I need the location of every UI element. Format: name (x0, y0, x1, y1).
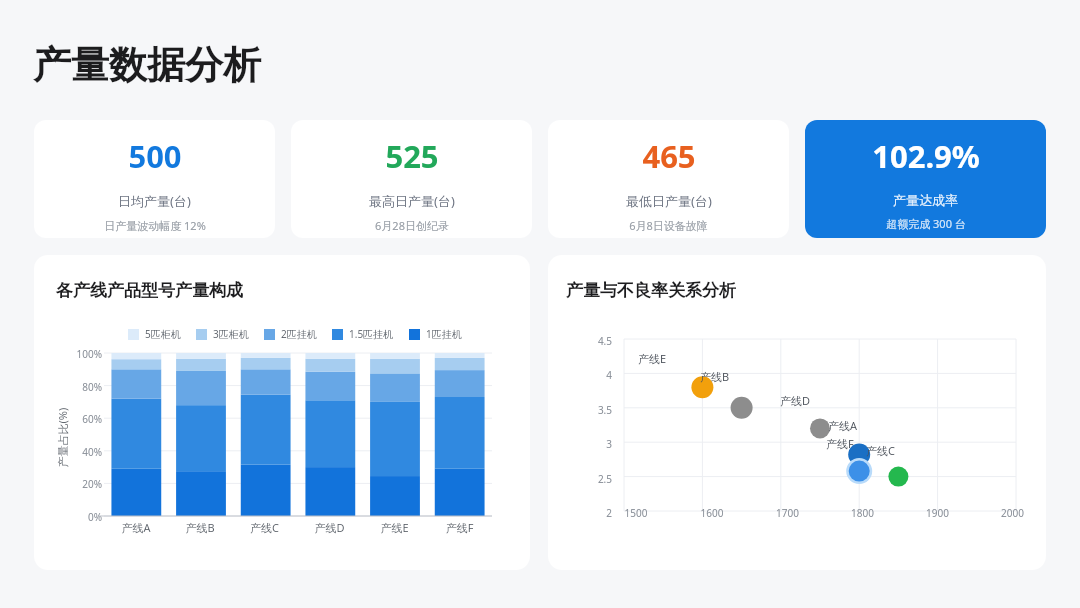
staticText: 产线C (232, 520, 297, 535)
button[interactable]: 500 (34, 120, 275, 238)
staticText: 产量占比(%) (54, 407, 69, 467)
staticText: 产量数据分析 (33, 41, 261, 89)
button[interactable]: 525 (291, 120, 532, 238)
staticText: 1600 (674, 506, 750, 520)
staticText: 2匹挂机 (281, 327, 317, 341)
staticText: 产线E (638, 351, 667, 366)
staticText: 3.5 (584, 403, 612, 417)
staticText: 1800 (825, 506, 900, 520)
staticText: 产量与不良率关系分析 (566, 280, 736, 301)
staticText: 500 (128, 135, 182, 177)
staticText: 最低日产量(台) (626, 192, 712, 210)
staticText: 4 (584, 368, 612, 382)
staticText: 60% (72, 412, 102, 426)
staticText: 各产线产品型号产量构成 (56, 280, 243, 301)
staticText: 40% (72, 445, 102, 459)
button[interactable]: 465 (548, 120, 789, 238)
staticText: 产线A (104, 520, 168, 535)
staticText: 4.5 (584, 334, 612, 348)
staticText: 80% (72, 380, 102, 394)
staticText: 产线E (362, 520, 427, 535)
staticText: 2.5 (584, 472, 612, 486)
staticText: 0% (72, 510, 102, 524)
staticText: 超额完成 300 台 (886, 216, 966, 231)
staticText: 20% (72, 477, 102, 491)
staticText: 465 (642, 135, 696, 177)
staticText: 日均产量(台) (118, 192, 191, 210)
staticText: 525 (385, 135, 439, 177)
staticText: 6月8日设备故障 (629, 218, 708, 233)
staticText: 2 (584, 506, 612, 520)
staticText: 3 (584, 437, 612, 451)
staticText: 最高日产量(台) (369, 192, 455, 210)
staticText: 1900 (900, 506, 975, 520)
staticText: 产线F (826, 436, 854, 451)
staticText: 日产量波动幅度 12% (104, 218, 206, 233)
staticText: 2000 (975, 506, 1046, 520)
staticText: 产线B (700, 369, 730, 384)
staticText: 产线B (168, 520, 232, 535)
button[interactable]: 102.9% (805, 120, 1046, 238)
staticText: 1匹挂机 (426, 327, 462, 341)
staticText: 102.9% (872, 135, 980, 177)
staticText: 1500 (598, 506, 674, 520)
staticText: 5匹柜机 (145, 327, 181, 341)
staticText: 1.5匹挂机 (349, 327, 394, 341)
staticText: 1700 (750, 506, 825, 520)
staticText: 产线A (828, 418, 858, 433)
staticText: 产线F (427, 520, 492, 535)
staticText: 100% (72, 347, 102, 361)
staticText: 3匹柜机 (213, 327, 249, 341)
button[interactable]: 产量与不良率关系分析 (548, 255, 1046, 570)
staticText: 6月28日创纪录 (375, 218, 449, 233)
staticText: 产线D (297, 520, 362, 535)
staticText: 产量达成率 (893, 192, 958, 208)
button[interactable]: 各产线产品型号产量构成 (34, 255, 530, 570)
staticText: 产线C (866, 443, 895, 458)
staticText: 产线D (780, 393, 811, 408)
